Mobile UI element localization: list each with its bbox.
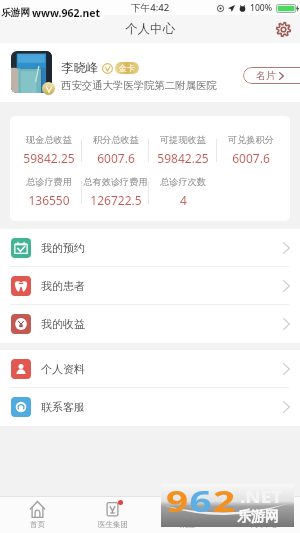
staticText: .NET <box>240 486 282 508</box>
staticText: 乐游网 <box>237 508 279 526</box>
staticText: 个人资料 <box>41 362 85 376</box>
button[interactable]: 联系客服 <box>0 388 300 426</box>
staticText: 医生集团 <box>98 520 128 529</box>
staticText: 我的预约 <box>41 241 85 255</box>
staticText: 我的患者 <box>41 279 85 293</box>
staticText: 西安交通大学医学院第二附属医院 <box>61 79 217 92</box>
staticText: 6007.6 <box>97 150 135 166</box>
staticText: 59842.25 <box>23 150 75 166</box>
staticText: 59842.25 <box>157 150 209 166</box>
staticText: 6007.6 <box>232 150 270 166</box>
button[interactable]: 我的预约 <box>0 229 300 267</box>
staticText: 我的收益 <box>41 317 85 331</box>
staticText: 首页 <box>30 520 45 529</box>
button[interactable]: 医生集团 <box>75 497 150 533</box>
staticText: 总诊疗费用 <box>26 176 72 188</box>
staticText: 联系客服 <box>41 400 85 414</box>
staticText: 名片 <box>256 69 276 82</box>
staticText: 积分总收益 <box>93 134 139 146</box>
staticText: 现金总收益 <box>26 134 72 146</box>
button[interactable]: 个人资料 <box>0 350 300 388</box>
staticText: 下午4:42 <box>131 1 170 14</box>
staticText: 消息 <box>180 520 195 529</box>
button[interactable]: 消息 <box>150 497 225 533</box>
staticText: 4 <box>180 192 187 208</box>
staticText: 总有效诊疗费用 <box>83 176 148 188</box>
staticText: 金卡 <box>119 63 135 73</box>
staticText: 126722.5 <box>90 192 142 208</box>
staticText: 乐游网 <box>1 7 30 19</box>
button[interactable]: Settings <box>272 18 294 40</box>
staticText: 可提现收益 <box>160 134 206 146</box>
staticText: 李晓峰 <box>61 60 99 76</box>
button[interactable]: 个人中心 <box>225 497 300 533</box>
staticText: 个人中心 <box>125 21 175 37</box>
staticText: 可兑换积分 <box>228 134 274 146</box>
staticText: www.962.net <box>32 6 101 20</box>
staticText: 100% <box>250 2 273 14</box>
button[interactable]: 我的患者 <box>0 267 300 305</box>
button[interactable]: 名片 <box>243 67 300 84</box>
staticText: 136550 <box>28 192 70 208</box>
staticText: 个人中心 <box>248 520 278 529</box>
staticText: 2 <box>213 482 236 520</box>
staticText: 总诊疗次数 <box>160 176 206 188</box>
staticText: 9 <box>166 482 189 520</box>
button[interactable]: 我的收益 <box>0 305 300 343</box>
button[interactable]: 首页 <box>0 497 75 533</box>
staticText: 6 <box>189 482 213 520</box>
